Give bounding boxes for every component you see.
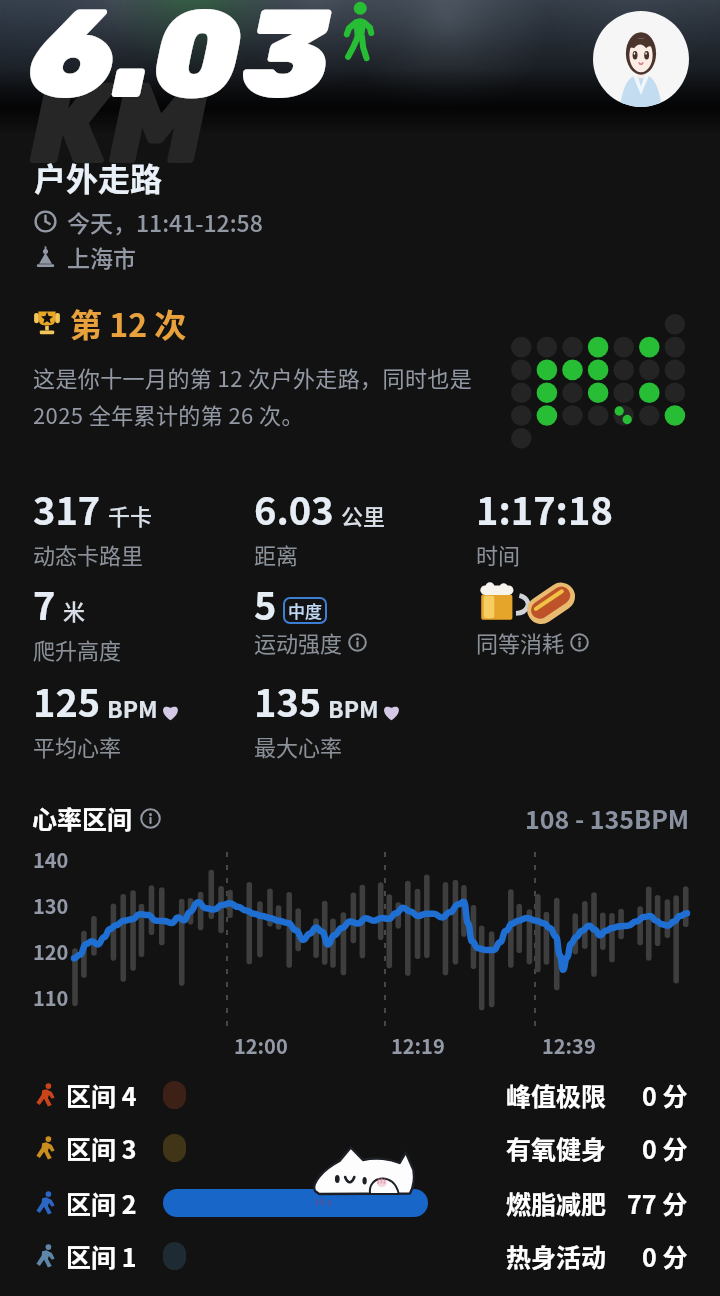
staticText: 上海市 xyxy=(67,240,136,273)
staticText: 户外走路 xyxy=(34,154,163,200)
staticText: 区间 2 xyxy=(66,1185,137,1221)
button[interactable]: 区间 3 xyxy=(0,1122,720,1174)
staticText: 米 xyxy=(63,594,86,626)
staticText: 0 分 xyxy=(642,1077,688,1113)
staticText: 这是你十一月的第 12 次户外走路，同时也是 xyxy=(33,361,473,393)
button[interactable]: Profile xyxy=(593,11,689,107)
staticText: 140 xyxy=(33,845,69,874)
staticText: 最大心率 xyxy=(254,730,343,762)
staticText: 135 xyxy=(254,673,322,728)
staticText: 110 xyxy=(33,983,69,1012)
staticText: 5 xyxy=(254,576,277,631)
staticText: 7 xyxy=(33,576,56,631)
staticText: 6.03 xyxy=(254,481,334,536)
staticText: KM xyxy=(30,56,205,191)
staticText: 燃脂减肥 xyxy=(506,1185,607,1221)
staticText: 区间 4 xyxy=(66,1077,137,1113)
staticText: 区间 1 xyxy=(66,1238,137,1274)
staticText: BPM xyxy=(328,691,379,724)
staticText: 0 分 xyxy=(642,1238,688,1274)
staticText: 心率区间 xyxy=(32,800,133,836)
staticText: 12:39 xyxy=(542,1031,596,1060)
staticText: 130 xyxy=(33,891,69,920)
staticText: 热身活动 xyxy=(506,1238,607,1274)
button[interactable]: 运动强度 xyxy=(254,626,367,658)
staticText: 12:00 xyxy=(234,1031,288,1060)
staticText: 317 xyxy=(33,481,101,536)
staticText: 爬升高度 xyxy=(33,633,122,665)
staticText: 动态卡路里 xyxy=(33,538,144,570)
staticText: 125 xyxy=(33,673,101,728)
staticText: 有氧健身 xyxy=(506,1130,607,1166)
staticText: 峰值极限 xyxy=(506,1077,607,1113)
staticText: 时间 xyxy=(476,538,521,570)
staticText: 中度 xyxy=(288,598,322,623)
staticText: 运动强度 xyxy=(254,626,343,658)
staticText: 108 - 135BPM xyxy=(525,800,690,836)
staticText: 区间 3 xyxy=(66,1130,137,1166)
button[interactable]: 第 12 次 xyxy=(30,300,187,344)
staticText: 千卡 xyxy=(108,499,153,531)
staticText: 0 分 xyxy=(642,1130,688,1166)
staticText: 6.03 xyxy=(28,0,330,128)
staticText: 第 12 次 xyxy=(70,300,187,344)
staticText: BPM xyxy=(107,691,158,724)
button[interactable]: 区间 2 xyxy=(0,1177,720,1229)
staticText: 2025 全年累计的第 26 次。 xyxy=(33,398,304,430)
staticText: 距离 xyxy=(254,538,299,570)
staticText: 同等消耗 xyxy=(476,626,565,658)
button[interactable]: 心率区间 xyxy=(0,800,720,836)
button[interactable]: 区间 4 xyxy=(0,1069,720,1121)
staticText: 12:19 xyxy=(391,1031,445,1060)
button[interactable]: 区间 1 xyxy=(0,1230,720,1282)
button[interactable]: 同等消耗 xyxy=(476,626,589,658)
staticText: 77 分 xyxy=(627,1185,688,1221)
staticText: 平均心率 xyxy=(33,730,122,762)
staticText: 公里 xyxy=(341,499,386,531)
staticText: 今天，11:41-12:58 xyxy=(67,205,263,238)
staticText: 120 xyxy=(33,937,69,966)
staticText: 1:17:18 xyxy=(476,481,613,536)
